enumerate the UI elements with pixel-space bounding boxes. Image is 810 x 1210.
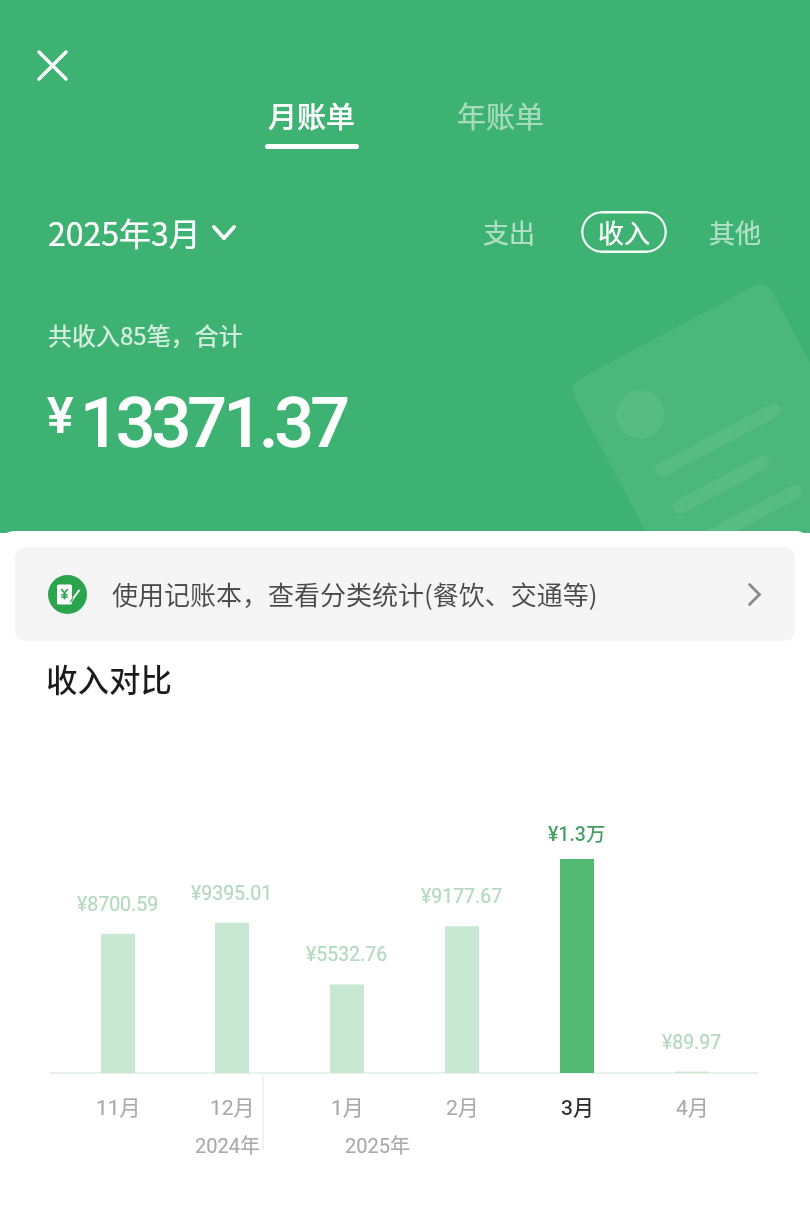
staticText: 其他 bbox=[709, 213, 762, 251]
staticText: ¥89.97 bbox=[662, 1031, 722, 1054]
staticText: 月账单 bbox=[268, 94, 356, 136]
staticText: ¥1.3万 bbox=[548, 818, 606, 846]
staticText: ¥5532.76 bbox=[306, 943, 388, 966]
button[interactable]: Close bbox=[24, 37, 80, 93]
staticText: 1月 bbox=[331, 1091, 364, 1121]
staticText: ¥9395.01 bbox=[191, 882, 273, 905]
staticText: 共收入85笔，合计 bbox=[48, 317, 243, 352]
staticText: 2025年 bbox=[345, 1130, 410, 1159]
staticText: 收入 bbox=[598, 213, 651, 251]
staticText: 12月 bbox=[210, 1091, 255, 1121]
button[interactable]: 2025年3月 bbox=[48, 209, 236, 255]
staticText: 13371.37 bbox=[80, 382, 346, 464]
staticText: 2024年 bbox=[195, 1130, 260, 1159]
button[interactable]: 支出 bbox=[473, 207, 546, 257]
staticText: 收入对比 bbox=[46, 655, 173, 701]
button[interactable]: 使用记账本，查看分类统计(餐饮、交通等) bbox=[15, 547, 795, 641]
button[interactable]: 收入 bbox=[581, 211, 667, 253]
staticText: ¥9177.67 bbox=[421, 885, 503, 908]
staticText: 11月 bbox=[96, 1091, 141, 1121]
staticText: 2月 bbox=[446, 1091, 479, 1121]
staticText: 4月 bbox=[676, 1091, 709, 1121]
button[interactable]: 其他 bbox=[699, 207, 772, 257]
staticText: ¥ bbox=[47, 387, 74, 446]
staticText: 2025年3月 bbox=[48, 209, 201, 255]
button[interactable]: 月账单 bbox=[251, 94, 373, 149]
staticText: 支出 bbox=[483, 213, 536, 251]
staticText: ¥8700.59 bbox=[77, 893, 159, 916]
staticText: 3月 bbox=[561, 1091, 594, 1121]
button[interactable]: 年账单 bbox=[443, 94, 559, 136]
staticText: 使用记账本，查看分类统计(餐饮、交通等) bbox=[112, 575, 598, 613]
staticText: 年账单 bbox=[457, 94, 545, 136]
